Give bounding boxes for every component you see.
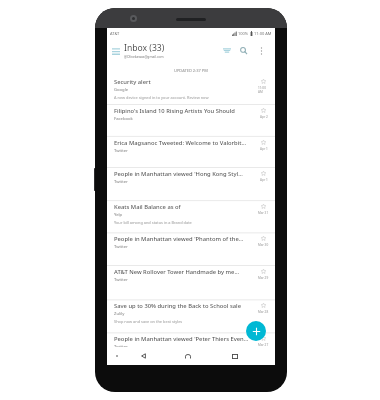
staticText: Google xyxy=(114,87,129,93)
staticText: Inbox (33) xyxy=(124,42,165,54)
staticText: A new device signed in to your account. … xyxy=(114,95,209,100)
staticText: AT&T xyxy=(110,31,120,36)
staticText: Your bill among and status in a Brand da… xyxy=(114,220,192,225)
button[interactable]: Save up to 30% during the Back to School… xyxy=(107,300,275,333)
staticText: Zulily xyxy=(114,311,125,317)
staticText: AT&T New Rollover Tower Handmade by me..… xyxy=(114,268,240,276)
button[interactable]: Sort xyxy=(220,44,233,57)
staticText: Twitter xyxy=(114,244,128,250)
staticText: Mar 31 xyxy=(258,211,269,215)
button[interactable]: People in Manhattan viewed 'Peter Thiers… xyxy=(107,333,275,356)
staticText: Facebook xyxy=(114,116,133,122)
button[interactable]: AT&T New Rollover Tower Handmade by me..… xyxy=(107,266,275,300)
staticText: Apr 1 xyxy=(260,147,268,151)
button[interactable]: Security alert xyxy=(107,76,275,105)
button[interactable]: People in Manhattan viewed 'Phantom of t… xyxy=(107,233,275,265)
staticText: Keats Mail Balance as of xyxy=(114,203,181,211)
staticText: People in Manhattan viewed 'Phantom of t… xyxy=(114,235,244,243)
button[interactable]: More options xyxy=(256,44,267,57)
staticText: Twitter xyxy=(114,344,128,350)
button[interactable]: Home xyxy=(182,347,194,365)
staticText: Mar 28 xyxy=(258,310,269,314)
staticText: Twitter xyxy=(114,179,128,185)
staticText: @Olivekawas@gmail.com xyxy=(124,54,164,58)
staticText: Twitter xyxy=(114,148,128,154)
staticText: People in Manhattan viewed 'Peter Thiers… xyxy=(114,335,249,343)
staticText: Mar 27 xyxy=(258,343,269,347)
button[interactable]: Recents xyxy=(229,347,241,365)
staticText: UPDATED 2:37 PM xyxy=(174,68,208,73)
button[interactable]: Search xyxy=(237,44,250,57)
staticText: Yelp xyxy=(114,212,123,218)
button[interactable]: Hide navigation xyxy=(112,347,122,365)
staticText: Mar 29 xyxy=(258,276,269,280)
button[interactable]: Filipino's Island 10 Rising Artists You … xyxy=(107,105,275,137)
staticText: Apr 2 xyxy=(260,115,268,119)
button[interactable]: Back xyxy=(137,347,149,365)
button[interactable]: Erica Magsanoc Tweeted: Welcome to Valor… xyxy=(107,137,275,168)
staticText: People in Manhattan viewed 'Hong Kong St… xyxy=(114,170,243,178)
staticText: Shop now and save on the best styles xyxy=(114,319,183,324)
staticText: Save up to 30% during the Back to School… xyxy=(114,302,241,310)
button[interactable]: Menu xyxy=(108,44,123,57)
button[interactable]: Keats Mail Balance as of xyxy=(107,201,275,233)
staticText: 11:00 AM xyxy=(258,86,269,94)
staticText: Erica Magsanoc Tweeted: Welcome to Valor… xyxy=(114,139,247,147)
staticText: 100% xyxy=(238,31,249,36)
button[interactable]: Compose xyxy=(246,321,266,341)
staticText: Security alert xyxy=(114,78,151,86)
staticText: Apr 1 xyxy=(260,178,268,182)
staticText: Mar 30 xyxy=(258,243,269,247)
button[interactable]: People in Manhattan viewed 'Hong Kong St… xyxy=(107,168,275,201)
staticText: Twitter xyxy=(114,277,128,283)
staticText: 11:00 AM xyxy=(254,31,272,36)
staticText: Filipino's Island 10 Rising Artists You … xyxy=(114,107,235,115)
